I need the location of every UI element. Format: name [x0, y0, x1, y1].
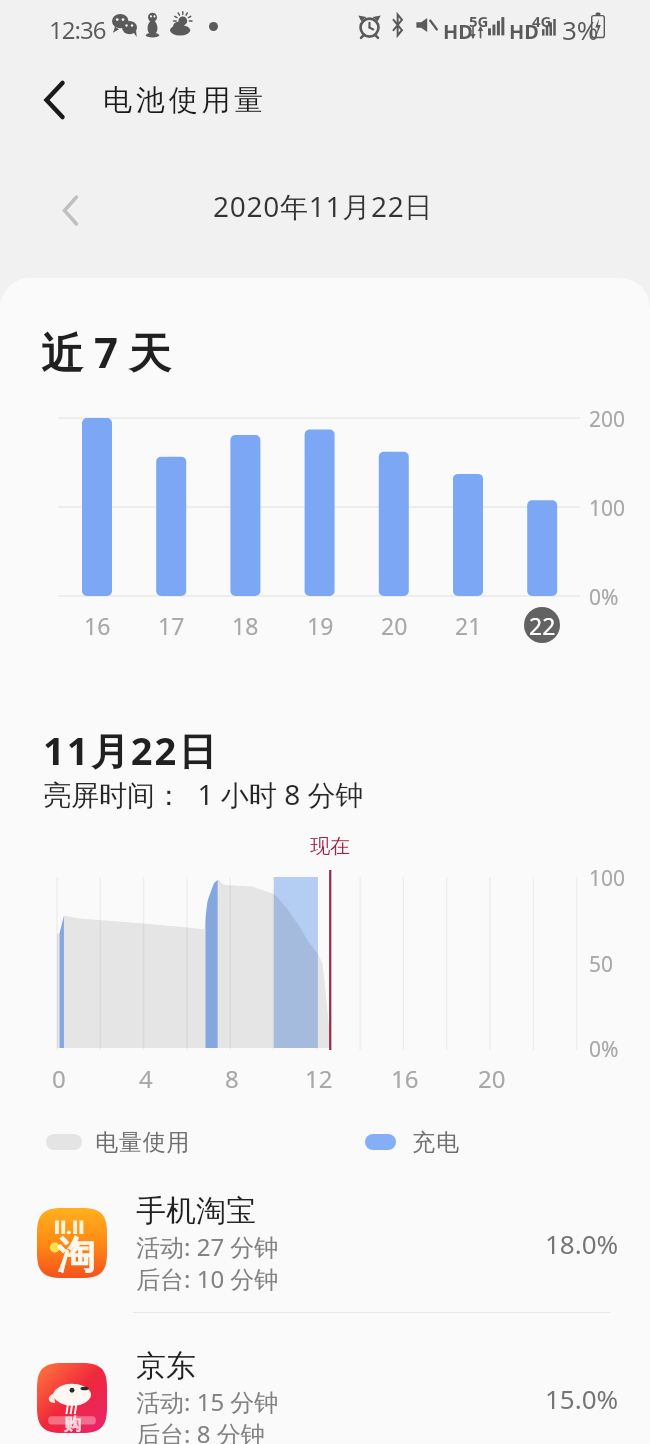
- staticText: 电量使用: [95, 1128, 191, 1157]
- staticText: 100: [589, 864, 626, 893]
- button[interactable]: 购: [0, 1343, 650, 1444]
- staticText: 电池使用量: [103, 82, 267, 119]
- staticText: 21: [455, 610, 482, 641]
- staticText: 活动: 27 分钟: [136, 1230, 279, 1263]
- staticText: 22: [529, 610, 556, 641]
- button[interactable]: 电量使用: [46, 1121, 191, 1163]
- button[interactable]: Back: [26, 72, 82, 128]
- staticText: 0%: [589, 583, 619, 612]
- staticText: 4G: [532, 11, 552, 31]
- staticText: 16: [391, 1062, 419, 1095]
- staticText: 亮屏时间： 1 小时 8 分钟: [43, 775, 364, 813]
- staticText: 2020年11月22日: [213, 187, 434, 225]
- staticText: 0%: [589, 1035, 619, 1064]
- staticText: 0: [52, 1062, 66, 1095]
- staticText: 16: [84, 610, 111, 641]
- staticText: 15.0%: [545, 1381, 619, 1416]
- staticText: 18: [232, 610, 259, 641]
- staticText: 18.0%: [545, 1226, 619, 1261]
- staticText: 100: [589, 494, 626, 523]
- staticText: 现在: [310, 834, 350, 859]
- staticText: 后台: 10 分钟: [136, 1262, 279, 1295]
- staticText: 8: [225, 1062, 239, 1095]
- staticText: 17: [158, 610, 185, 641]
- button[interactable]: 22: [524, 607, 560, 643]
- staticText: 20: [381, 610, 408, 641]
- staticText: 3%: [562, 12, 599, 47]
- staticText: 5G: [469, 11, 489, 31]
- staticText: 11月22日: [43, 724, 219, 776]
- button[interactable]: 淘: [0, 1188, 650, 1300]
- staticText: 后台: 8 分钟: [136, 1417, 265, 1444]
- staticText: 近 7 天: [41, 323, 171, 380]
- staticText: 19: [307, 610, 334, 641]
- staticText: 20: [478, 1062, 506, 1095]
- staticText: 活动: 15 分钟: [136, 1385, 279, 1418]
- staticText: HD: [509, 18, 539, 45]
- staticText: 充电: [412, 1128, 460, 1157]
- staticText: 京东: [136, 1347, 196, 1385]
- staticText: 50: [589, 950, 614, 979]
- staticText: 购: [64, 1414, 81, 1435]
- staticText: 淘: [57, 1231, 95, 1279]
- staticText: 200: [589, 405, 626, 434]
- staticText: 4: [139, 1062, 153, 1095]
- staticText: HD: [443, 18, 473, 45]
- staticText: 12:36: [49, 13, 106, 46]
- staticText: 12: [305, 1062, 333, 1095]
- button[interactable]: Previous day: [43, 183, 97, 237]
- staticText: 手机淘宝: [136, 1192, 256, 1230]
- button[interactable]: 充电: [365, 1121, 460, 1163]
